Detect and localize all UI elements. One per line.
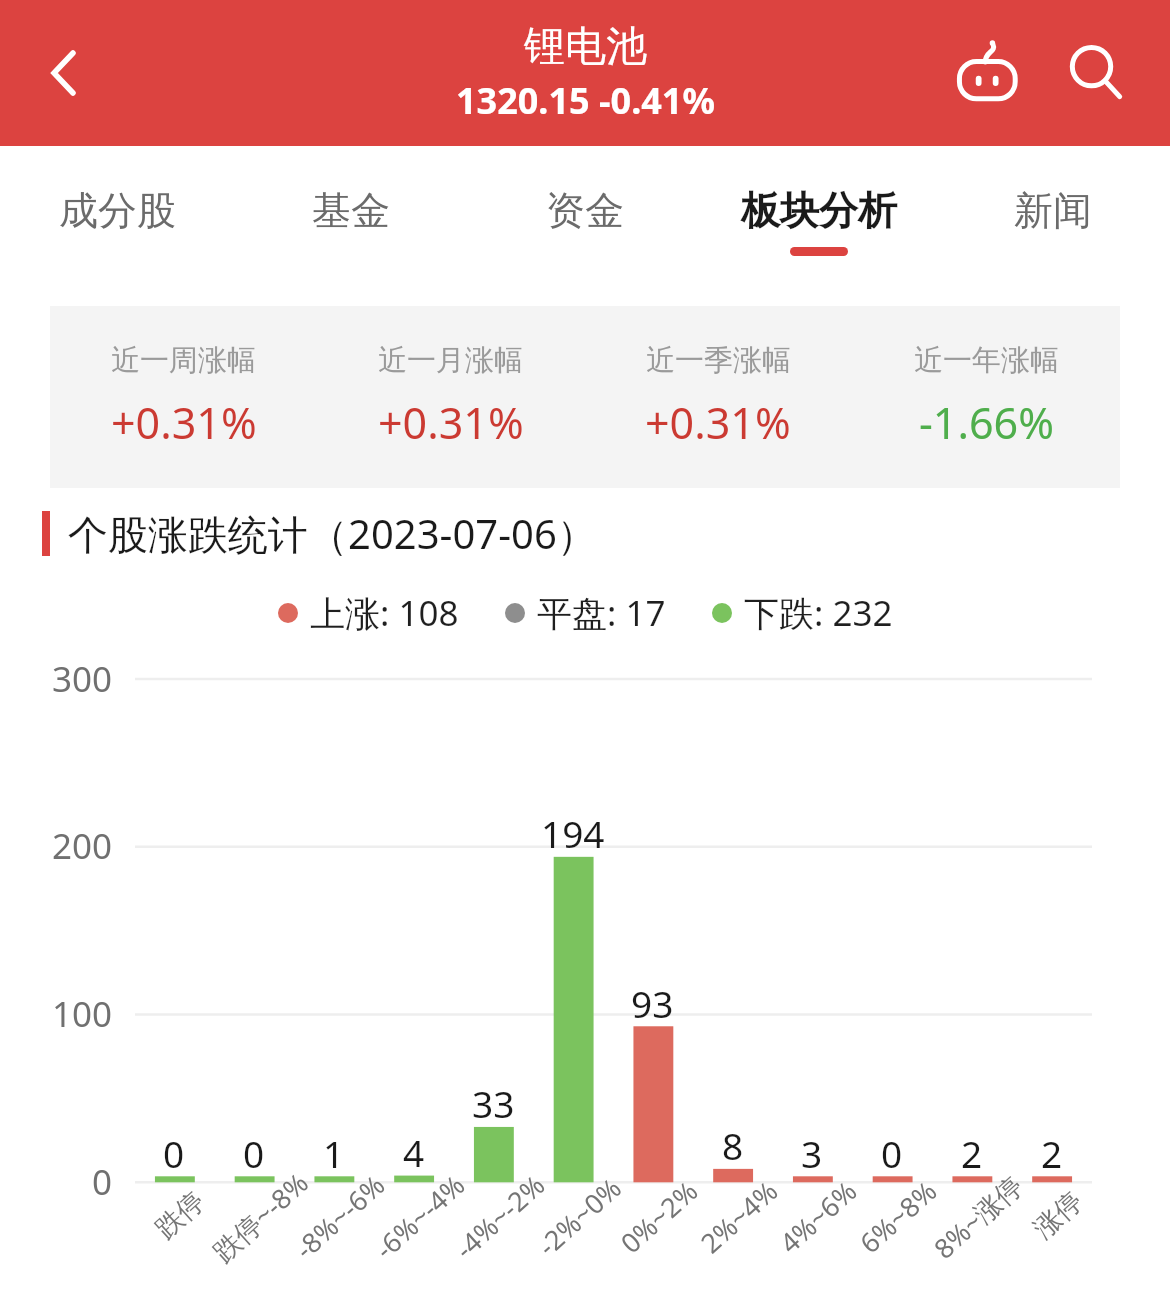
staticText: 93	[631, 978, 674, 1028]
staticText: 300	[52, 655, 113, 703]
staticText: 2	[1041, 1128, 1063, 1178]
staticText: 1	[323, 1128, 345, 1178]
staticText: -2%~0%	[529, 1169, 629, 1264]
button[interactable]: Back	[18, 27, 110, 119]
button[interactable]: Search	[1048, 25, 1144, 121]
staticText: 跌停	[149, 1184, 211, 1246]
staticText: 8	[722, 1120, 744, 1170]
staticText: 4	[403, 1127, 425, 1177]
staticText: 0	[243, 1128, 265, 1178]
staticText: 194	[541, 808, 605, 858]
staticText: 跌停~-8%	[205, 1164, 316, 1269]
button[interactable]: 板块分析	[702, 146, 936, 296]
staticText: 0	[881, 1128, 903, 1178]
button[interactable]: 上涨: 108	[278, 589, 459, 637]
staticText: 下跌: 232	[744, 589, 893, 637]
staticText: 2	[961, 1128, 983, 1178]
staticText: 0%~2%	[612, 1172, 705, 1261]
staticText: +0.31%	[111, 393, 257, 452]
staticText: +0.31%	[645, 393, 791, 452]
button[interactable]: 资金	[468, 146, 702, 296]
staticText: -6%~-4%	[367, 1166, 472, 1267]
button[interactable]: AI assistant	[940, 25, 1036, 121]
button[interactable]: 成分股	[0, 146, 234, 296]
button[interactable]: 平盘: 17	[505, 589, 666, 637]
staticText: 资金	[546, 186, 624, 235]
staticText: 平盘: 17	[537, 589, 666, 637]
button[interactable]: 新闻	[936, 146, 1170, 296]
staticText: 近一周涨幅	[111, 342, 256, 379]
staticText: 上涨: 108	[310, 589, 459, 637]
staticText: 基金	[312, 186, 390, 235]
staticText: -4%~-2%	[447, 1166, 552, 1267]
staticText: 0	[163, 1128, 185, 1178]
staticText: 6%~8%	[851, 1172, 944, 1261]
staticText: 锂电池	[524, 21, 647, 73]
staticText: 新闻	[1014, 186, 1092, 235]
staticText: 100	[52, 990, 113, 1038]
staticText: +0.31%	[378, 393, 524, 452]
staticText: 近一季涨幅	[646, 342, 791, 379]
staticText: 200	[52, 822, 113, 870]
staticText: 4%~6%	[771, 1172, 864, 1261]
staticText: 0	[92, 1158, 113, 1206]
staticText: 涨停	[1027, 1184, 1089, 1246]
staticText: -8%~-6%	[287, 1166, 392, 1267]
staticText: 个股涨跌统计（2023-07-06）	[68, 506, 597, 561]
staticText: -1.66%	[919, 393, 1054, 452]
staticText: 成分股	[59, 186, 176, 235]
staticText: 3	[801, 1128, 823, 1178]
staticText: 近一年涨幅	[914, 342, 1059, 379]
button[interactable]: 下跌: 232	[712, 589, 893, 637]
staticText: 8%~涨停	[925, 1167, 1030, 1266]
button[interactable]: 基金	[234, 146, 468, 296]
staticText: 近一月涨幅	[378, 342, 523, 379]
staticText: 板块分析	[741, 186, 897, 235]
staticText: 1320.15 -0.41%	[456, 76, 715, 125]
staticText: 2%~4%	[692, 1172, 785, 1261]
staticText: 33	[472, 1078, 515, 1128]
